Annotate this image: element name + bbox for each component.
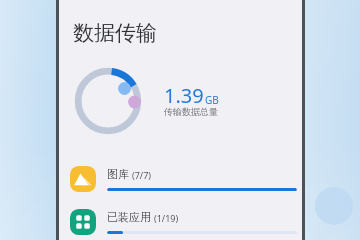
staticText: 数据传输: [73, 20, 157, 46]
staticText: GB: [205, 93, 219, 107]
staticText: (7/7): [132, 169, 152, 181]
staticText: 1.39: [164, 82, 204, 109]
staticText: 传输数据总量: [164, 106, 218, 117]
other: Gallery: [69, 165, 97, 193]
other: Installed apps: [69, 208, 97, 236]
staticText: 图库: [107, 167, 129, 181]
staticText: 已装应用: [107, 210, 151, 224]
button[interactable]: Installed apps: [69, 203, 297, 240]
button[interactable]: Gallery: [69, 160, 297, 198]
staticText: (1/19): [154, 212, 179, 224]
